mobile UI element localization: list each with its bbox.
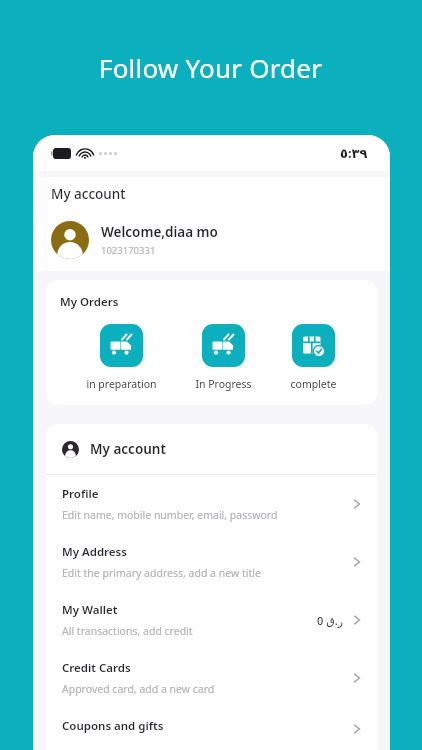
staticText: My account (90, 440, 166, 458)
staticText: Coupons and gifts (62, 718, 164, 734)
staticText: Credit Cards (62, 660, 131, 676)
staticText: My Wallet (62, 602, 118, 618)
staticText: 1023170331 (101, 244, 156, 257)
staticText: All transactions, add credit (62, 624, 193, 638)
staticText: Follow Your Order (99, 50, 323, 85)
staticText: in preparation (86, 377, 157, 391)
other: Open Coupons and gifts (351, 723, 363, 735)
staticText: My Address (62, 544, 127, 560)
staticText: Edit the primary address, add a new titl… (62, 566, 261, 580)
button[interactable]: My account (46, 424, 377, 474)
other: Open Credit Cards (351, 672, 363, 684)
staticText: My account (51, 185, 126, 203)
staticText: Profile (62, 486, 99, 502)
other: Open My Address (351, 556, 363, 568)
button[interactable]: Credit Cards (46, 649, 377, 707)
staticText: My Orders (60, 294, 119, 310)
button[interactable]: Profile (46, 475, 377, 533)
button[interactable]: Welcome,diaa mo (33, 213, 390, 271)
button[interactable]: Coupons and gifts (46, 707, 377, 750)
other: Open Profile (351, 498, 363, 510)
staticText: ٥:٣٩ (340, 144, 368, 162)
button[interactable]: My Wallet (46, 591, 377, 649)
button[interactable]: complete (286, 324, 341, 391)
staticText: ر.ق 0 (317, 613, 343, 628)
staticText: Approved card, add a new card (62, 682, 215, 696)
staticText: complete (290, 377, 337, 391)
button[interactable]: in preparation (82, 324, 161, 391)
staticText: Welcome,diaa mo (101, 223, 218, 241)
other: Open My Wallet (351, 614, 363, 626)
staticText: In Progress (195, 377, 252, 391)
staticText: Edit name, mobile number, email, passwor… (62, 508, 278, 522)
button[interactable]: In Progress (191, 324, 256, 391)
button[interactable]: My Address (46, 533, 377, 591)
